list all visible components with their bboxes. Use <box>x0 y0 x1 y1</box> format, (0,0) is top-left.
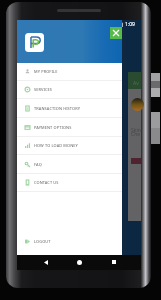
staticText: 1:09 <box>125 21 135 27</box>
button[interactable]: MY PROFILE <box>17 62 122 81</box>
staticText: HOW TO LOAD MONEY <box>34 143 78 148</box>
button[interactable]: HOW TO LOAD MONEY <box>17 136 122 155</box>
button[interactable]: Home <box>77 260 82 265</box>
staticText: CONTACT US <box>34 180 59 185</box>
staticText: MY PROFILE <box>34 69 58 74</box>
button[interactable]: SERVICES <box>17 80 122 99</box>
button[interactable]: FAQ <box>17 155 122 174</box>
button[interactable]: PAYMENT OPTIONS <box>17 118 122 137</box>
staticText: Av <box>133 80 139 87</box>
staticText: SERVICES <box>34 87 53 92</box>
button[interactable]: Close navigation drawer <box>110 27 122 39</box>
staticText: TRANSACTION HISTORY <box>34 106 81 111</box>
button[interactable]: TRANSACTION HISTORY <box>17 99 122 118</box>
button[interactable]: Back <box>44 260 48 265</box>
staticText: FAQ <box>34 162 42 167</box>
staticText: LOGOUT <box>34 239 51 244</box>
button[interactable]: CONTACT US <box>17 173 122 192</box>
button[interactable]: LOGOUT <box>17 232 122 251</box>
staticText: PAYMENT OPTIONS <box>34 125 72 130</box>
button[interactable]: App logo <box>25 33 44 52</box>
staticText: Skin Che <box>131 127 141 138</box>
